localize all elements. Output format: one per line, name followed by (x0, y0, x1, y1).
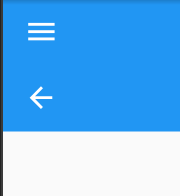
button[interactable]: Navigate back (18, 79, 64, 116)
button[interactable]: Open navigation menu (16, 13, 64, 51)
